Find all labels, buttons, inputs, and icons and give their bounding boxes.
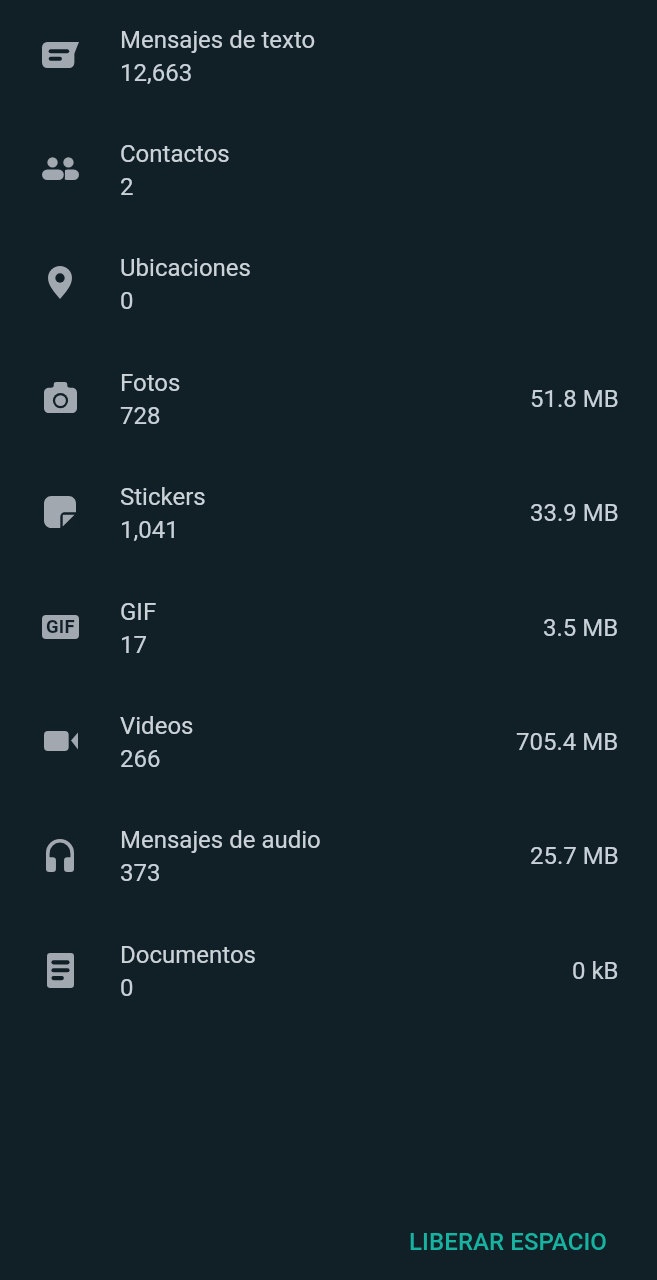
button[interactable]: Documentos bbox=[0, 922, 657, 1036]
staticText: Stickers bbox=[120, 483, 206, 511]
staticText: Contactos bbox=[120, 140, 230, 168]
staticText: 12,663 bbox=[120, 59, 193, 87]
button[interactable]: Videos bbox=[0, 693, 657, 807]
button[interactable]: Mensajes de audio bbox=[0, 807, 657, 921]
staticText: 1,041 bbox=[120, 516, 179, 544]
staticText: Mensajes de texto bbox=[120, 26, 316, 54]
button[interactable]: Ubicaciones bbox=[0, 235, 657, 349]
staticText: 33.9 MB bbox=[530, 499, 619, 527]
button[interactable]: Stickers bbox=[0, 464, 657, 578]
staticText: Videos bbox=[120, 712, 194, 740]
staticText: 0 bbox=[120, 974, 134, 1002]
staticText: Ubicaciones bbox=[120, 254, 251, 282]
staticText: 51.8 MB bbox=[530, 385, 619, 413]
other: Mensajes de texto bbox=[42, 42, 79, 68]
other: Ubicaciones bbox=[48, 266, 72, 299]
other: Contactos bbox=[42, 157, 79, 180]
staticText: 373 bbox=[120, 859, 161, 887]
other: Videos bbox=[44, 731, 78, 751]
staticText: 2 bbox=[120, 173, 134, 201]
other: GIF bbox=[42, 615, 79, 639]
staticText: Documentos bbox=[120, 941, 256, 969]
other: Documentos bbox=[47, 953, 74, 988]
other: Stickers bbox=[44, 496, 76, 528]
staticText: GIF bbox=[46, 616, 75, 638]
staticText: 266 bbox=[120, 745, 161, 773]
staticText: 25.7 MB bbox=[530, 842, 619, 870]
staticText: Mensajes de audio bbox=[120, 826, 321, 854]
other: Fotos bbox=[44, 382, 77, 413]
other: Mensajes de audio bbox=[46, 839, 74, 872]
button[interactable]: GIF bbox=[0, 579, 657, 693]
staticText: 0 kB bbox=[572, 957, 619, 985]
staticText: 17 bbox=[120, 631, 147, 659]
staticText: 3.5 MB bbox=[543, 614, 619, 642]
staticText: 705.4 MB bbox=[516, 728, 619, 756]
staticText: 0 bbox=[120, 287, 134, 315]
button[interactable]: LIBERAR ESPACIO bbox=[393, 1216, 623, 1268]
button[interactable]: Contactos bbox=[0, 121, 657, 235]
staticText: Fotos bbox=[120, 369, 181, 397]
staticText: 728 bbox=[120, 402, 161, 430]
staticText: LIBERAR ESPACIO bbox=[409, 1228, 607, 1256]
button[interactable]: Mensajes de texto bbox=[0, 7, 657, 121]
button[interactable]: Fotos bbox=[0, 350, 657, 464]
staticText: GIF bbox=[120, 598, 157, 626]
